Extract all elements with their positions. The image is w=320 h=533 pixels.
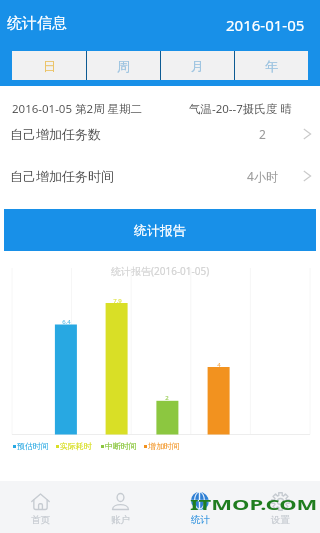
staticText: 中断时间: [105, 441, 137, 451]
staticText: 自己增加任务数: [10, 126, 101, 142]
staticText: 统计报告(2016-01-05): [111, 264, 210, 278]
staticText: 统计: [191, 514, 210, 526]
staticText: 实际耗时: [60, 441, 92, 451]
button[interactable]: 周: [87, 51, 160, 80]
button[interactable]: 统计报告: [4, 209, 316, 251]
button[interactable]: 自己增加任务数: [0, 114, 320, 154]
staticText: ITMOP.COM: [190, 494, 318, 514]
staticText: 4小时: [247, 168, 278, 184]
button[interactable]: Account: [80, 481, 160, 533]
staticText: 2016-01-05 第2周 星期二: [12, 101, 143, 117]
staticText: 2: [165, 394, 169, 402]
button[interactable]: Home: [0, 481, 80, 533]
staticText: 首页: [31, 514, 50, 526]
button[interactable]: 自己增加任务时间: [0, 156, 320, 196]
staticText: 统计信息: [7, 14, 67, 33]
staticText: 自己增加任务时间: [10, 168, 114, 184]
staticText: 日: [43, 58, 56, 74]
staticText: 统计报告: [134, 222, 186, 238]
staticText: 周: [117, 58, 130, 74]
staticText: 预估时间: [17, 441, 49, 451]
staticText: 月: [191, 58, 204, 74]
button[interactable]: 年: [235, 51, 308, 80]
staticText: 6.4: [62, 318, 71, 326]
staticText: 增加时间: [148, 441, 180, 451]
button[interactable]: 月: [161, 51, 234, 80]
button[interactable]: Statistics: [160, 481, 240, 533]
staticText: 设置: [271, 514, 290, 526]
staticText: 7.9: [113, 297, 122, 305]
button[interactable]: 日: [12, 51, 86, 80]
staticText: 2: [259, 126, 266, 142]
staticText: 4: [217, 361, 221, 369]
staticText: 账户: [111, 514, 130, 526]
staticText: 年: [265, 58, 278, 74]
button[interactable]: Settings: [240, 481, 320, 533]
staticText: 2016-01-05: [226, 15, 305, 35]
staticText: 气温-20--7摄氏度 晴: [189, 101, 292, 117]
